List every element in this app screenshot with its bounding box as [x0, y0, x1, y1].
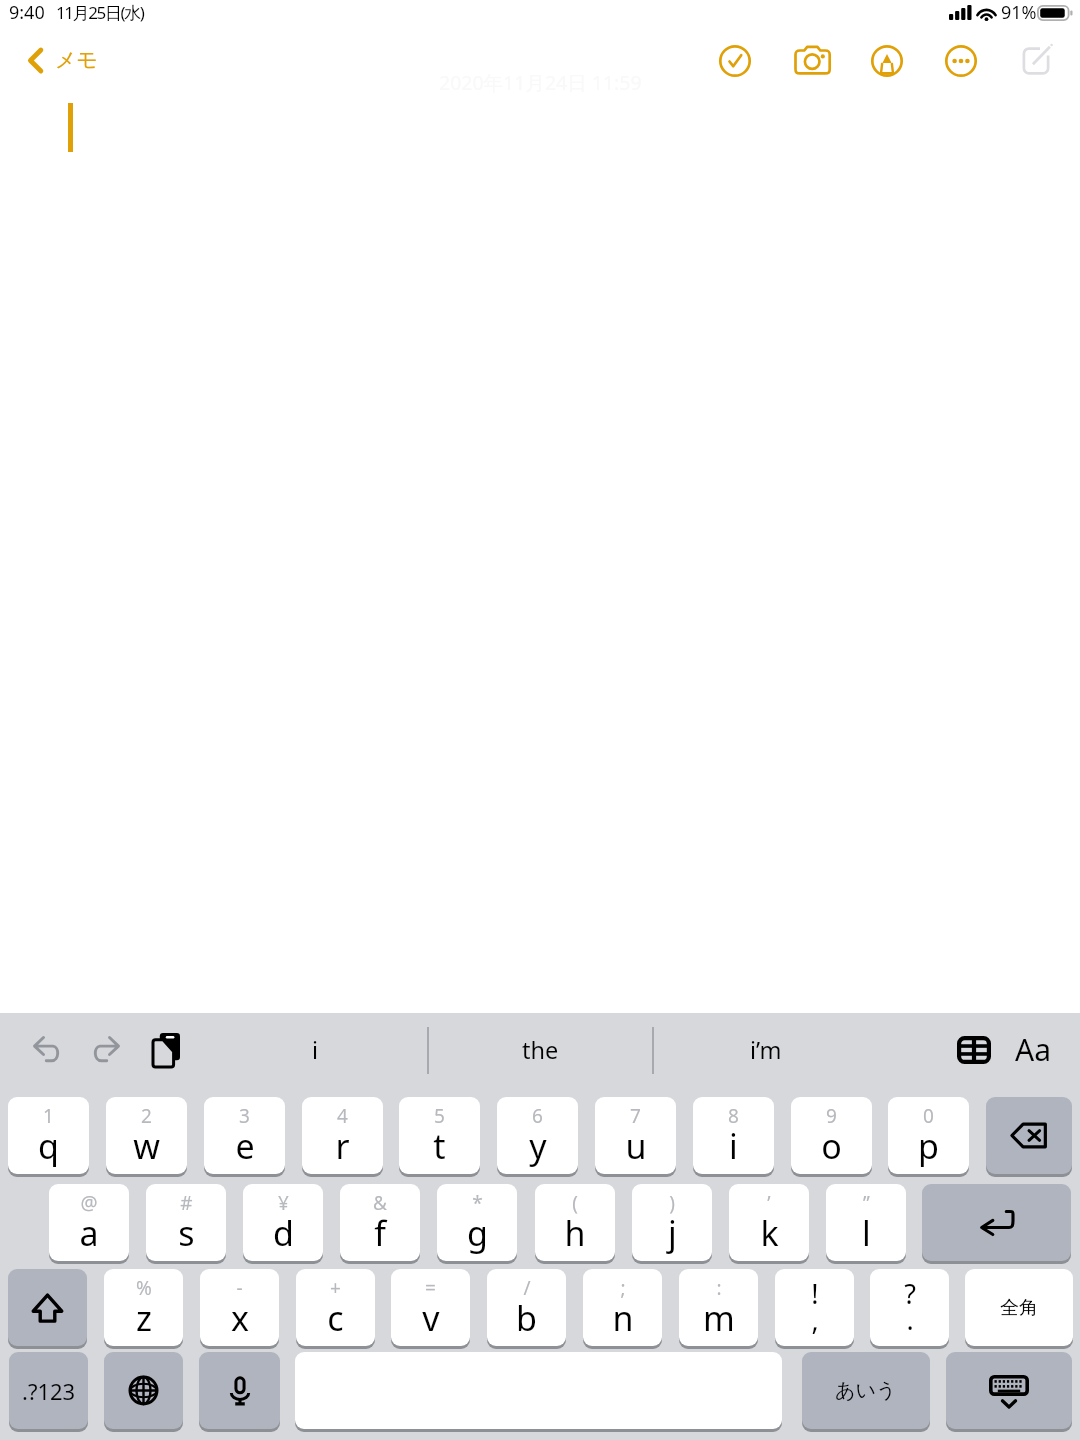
staticText: 3 [239, 1103, 250, 1129]
staticText: j [668, 1210, 677, 1256]
button[interactable]: - [200, 1269, 279, 1346]
staticText: 9:40 [9, 0, 45, 25]
staticText: + [330, 1275, 341, 1301]
button[interactable]: 5 [399, 1097, 480, 1174]
button[interactable]: : [679, 1269, 758, 1346]
staticText: k [760, 1210, 779, 1256]
staticText: m [703, 1295, 735, 1341]
button[interactable]: Camera [788, 37, 836, 85]
button[interactable]: 6 [497, 1097, 578, 1174]
staticText: v [422, 1295, 440, 1341]
button[interactable]: 全角 [965, 1269, 1073, 1346]
staticText: z [136, 1295, 152, 1341]
button[interactable]: ” [826, 1184, 906, 1261]
button[interactable]: 8 [693, 1097, 774, 1174]
staticText: ” [863, 1190, 870, 1216]
button[interactable]: 3 [204, 1097, 285, 1174]
button[interactable]: 1 [8, 1097, 89, 1174]
button[interactable]: Compose [1012, 37, 1060, 85]
button[interactable]: @ [49, 1184, 129, 1261]
button[interactable]: 4 [302, 1097, 383, 1174]
button[interactable]: Next keyboard [104, 1352, 183, 1429]
button[interactable]: ? [870, 1269, 949, 1346]
button[interactable]: Note body [0, 94, 1080, 1013]
button[interactable]: ’ [729, 1184, 809, 1261]
staticText: 11月25日(水) [56, 1, 144, 24]
button[interactable]: = [391, 1269, 470, 1346]
staticText: ! [811, 1275, 819, 1312]
staticText: , [811, 1301, 819, 1338]
staticText: l [862, 1210, 871, 1256]
staticText: 2 [141, 1103, 152, 1129]
staticText: . [906, 1301, 914, 1338]
staticText: 全角 [1000, 1296, 1038, 1320]
staticText: / [523, 1275, 531, 1301]
staticText: Aa [1015, 1029, 1051, 1070]
button[interactable]: Table [950, 1026, 998, 1074]
button[interactable]: ; [583, 1269, 662, 1346]
button[interactable]: Dictate [199, 1352, 280, 1429]
staticText: d [273, 1210, 294, 1256]
button[interactable]: i’m [653, 1019, 878, 1081]
button[interactable]: ) [632, 1184, 712, 1261]
staticText: 4 [337, 1103, 348, 1129]
button[interactable]: Paste [150, 1027, 190, 1067]
button[interactable]: 7 [595, 1097, 676, 1174]
staticText: b [516, 1295, 537, 1341]
button[interactable]: 0 [888, 1097, 969, 1174]
button[interactable]: Return [922, 1184, 1071, 1261]
staticText: ; [620, 1275, 626, 1301]
staticText: e [235, 1123, 255, 1169]
button[interactable]: # [146, 1184, 226, 1261]
staticText: 6 [532, 1103, 543, 1129]
button[interactable]: Done [711, 37, 759, 85]
button[interactable]: 2 [106, 1097, 187, 1174]
button[interactable]: + [296, 1269, 375, 1346]
staticText: s [178, 1210, 195, 1256]
button[interactable]: % [104, 1269, 183, 1346]
staticText: : [716, 1275, 722, 1301]
staticText: a [79, 1210, 99, 1256]
staticText: r [335, 1123, 350, 1169]
staticText: ( [572, 1190, 578, 1216]
staticText: 5 [434, 1103, 445, 1129]
button[interactable]: 9 [791, 1097, 872, 1174]
staticText: w [133, 1123, 160, 1169]
button[interactable]: .?123 [9, 1352, 88, 1429]
staticText: t [433, 1123, 446, 1169]
button[interactable]: Undo [24, 1025, 69, 1070]
button[interactable]: あいう [802, 1352, 930, 1429]
staticText: メモ [55, 47, 98, 73]
button[interactable]: Markup [863, 37, 911, 85]
button[interactable]: More [937, 37, 985, 85]
staticText: f [374, 1210, 386, 1256]
button[interactable]: ! [775, 1269, 854, 1346]
button[interactable]: Shift [8, 1269, 87, 1346]
button[interactable]: Hide keyboard [946, 1352, 1072, 1429]
button[interactable]: Backspace [986, 1097, 1072, 1174]
staticText: = [425, 1275, 436, 1301]
staticText: @ [80, 1190, 98, 1216]
staticText: ) [669, 1190, 675, 1216]
button[interactable]: the [428, 1019, 653, 1081]
staticText: 8 [728, 1103, 739, 1129]
button[interactable]: ( [535, 1184, 615, 1261]
button[interactable]: メモ [20, 41, 106, 79]
button[interactable]: i [203, 1019, 428, 1081]
staticText: x [231, 1295, 249, 1341]
button[interactable]: ¥ [243, 1184, 323, 1261]
staticText: ? [904, 1275, 916, 1312]
staticText: ’ [767, 1190, 771, 1216]
staticText: 9 [826, 1103, 837, 1129]
button[interactable]: Redo [83, 1025, 128, 1070]
staticText: 7 [630, 1103, 641, 1129]
button[interactable]: * [437, 1184, 517, 1261]
button[interactable]: Aa [1008, 1024, 1058, 1074]
staticText: i [312, 1034, 319, 1066]
staticText: # [180, 1190, 193, 1216]
button[interactable]: & [340, 1184, 420, 1261]
staticText: 91% [1001, 0, 1037, 25]
button[interactable]: / [487, 1269, 566, 1346]
button[interactable]: Space [295, 1352, 782, 1429]
